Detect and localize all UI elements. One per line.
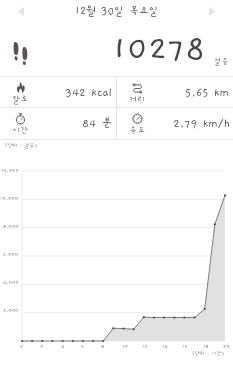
- staticText: 10: [122, 343, 128, 349]
- staticText: 2,000: [3, 307, 19, 313]
- button[interactable]: 칼로: [0, 77, 116, 107]
- staticText: 6: [81, 343, 84, 349]
- staticText: 속도: [129, 125, 146, 135]
- staticText: 10278: [112, 31, 206, 68]
- staticText: 4: [61, 343, 65, 349]
- staticText: 342 kcal: [65, 86, 113, 99]
- staticText: 12,000: [1, 167, 19, 173]
- staticText: 14: [162, 343, 168, 349]
- staticText: 16: [182, 343, 188, 349]
- staticText: 거리: [129, 94, 146, 104]
- staticText: 12월 30일 목요일: [75, 5, 159, 17]
- staticText: 5,65 km: [185, 86, 230, 99]
- staticText: 칼로: [12, 94, 29, 104]
- staticText: 6,000: [3, 251, 19, 257]
- staticText: 12: [142, 343, 148, 349]
- button[interactable]: 거리: [117, 77, 233, 107]
- staticText: (단위 : 걸음): [5, 142, 38, 148]
- staticText: 4,000: [3, 279, 19, 285]
- staticText: 2: [40, 343, 44, 349]
- staticText: 8: [101, 343, 105, 349]
- staticText: (단위 : 시간): [192, 350, 225, 356]
- staticText: 10,000: [0, 195, 19, 201]
- button[interactable]: 시간: [0, 108, 116, 139]
- staticText: 84 분: [82, 117, 113, 130]
- button[interactable]: Next day: [203, 2, 221, 20]
- staticText: 20: [223, 343, 230, 349]
- staticText: 0: [20, 343, 24, 349]
- button[interactable]: Previous day: [12, 2, 30, 20]
- staticText: 2,79 km/h: [173, 117, 230, 130]
- staticText: 18: [203, 343, 209, 349]
- staticText: 8,000: [3, 223, 19, 229]
- staticText: 걸음: [214, 57, 229, 66]
- staticText: 시간: [12, 125, 29, 135]
- button[interactable]: 속도: [117, 108, 233, 139]
